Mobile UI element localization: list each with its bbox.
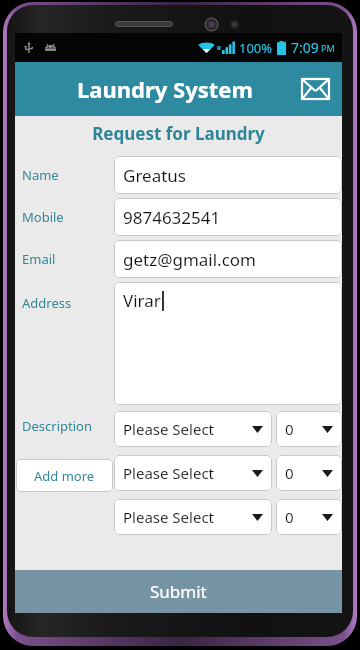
staticText: 9874632541 bbox=[123, 206, 221, 229]
staticText: getz@gmail.com bbox=[123, 248, 257, 271]
staticText: Virar bbox=[123, 289, 161, 312]
button[interactable]: Greatus bbox=[114, 156, 342, 194]
staticText: Mobile bbox=[22, 208, 64, 226]
staticText: 0 bbox=[285, 463, 294, 483]
staticText: 0 bbox=[285, 507, 294, 527]
button[interactable]: 0 bbox=[276, 455, 342, 491]
button[interactable]: 0 bbox=[276, 499, 342, 535]
staticText: Request for Laundry bbox=[15, 122, 342, 145]
staticText: PM bbox=[321, 42, 335, 54]
staticText: Submit bbox=[150, 580, 207, 603]
button[interactable]: Please Select bbox=[114, 499, 272, 535]
staticText: 0 bbox=[285, 419, 294, 439]
button[interactable]: Add more bbox=[16, 459, 113, 492]
staticText: Name bbox=[22, 166, 59, 184]
button[interactable]: getz@gmail.com bbox=[114, 240, 342, 278]
button[interactable]: Messages bbox=[298, 72, 332, 106]
button[interactable]: Please Select bbox=[114, 411, 272, 447]
staticText: Email bbox=[22, 250, 56, 268]
staticText: Add more bbox=[34, 467, 95, 485]
staticText: Please Select bbox=[123, 419, 215, 439]
button[interactable]: Virar bbox=[114, 282, 342, 405]
button[interactable]: 0 bbox=[276, 411, 342, 447]
staticText: Laundry System bbox=[77, 74, 253, 104]
staticText: 7:09 bbox=[291, 38, 319, 57]
staticText: Please Select bbox=[123, 463, 215, 483]
staticText: 100% bbox=[239, 39, 273, 57]
button[interactable]: Please Select bbox=[114, 455, 272, 491]
staticText: Greatus bbox=[123, 164, 186, 187]
button[interactable]: 9874632541 bbox=[114, 198, 342, 236]
staticText: Please Select bbox=[123, 507, 215, 527]
staticText: R bbox=[217, 44, 221, 52]
button[interactable]: Submit bbox=[15, 570, 342, 613]
staticText: Description bbox=[22, 417, 92, 435]
staticText: Address bbox=[22, 294, 72, 312]
